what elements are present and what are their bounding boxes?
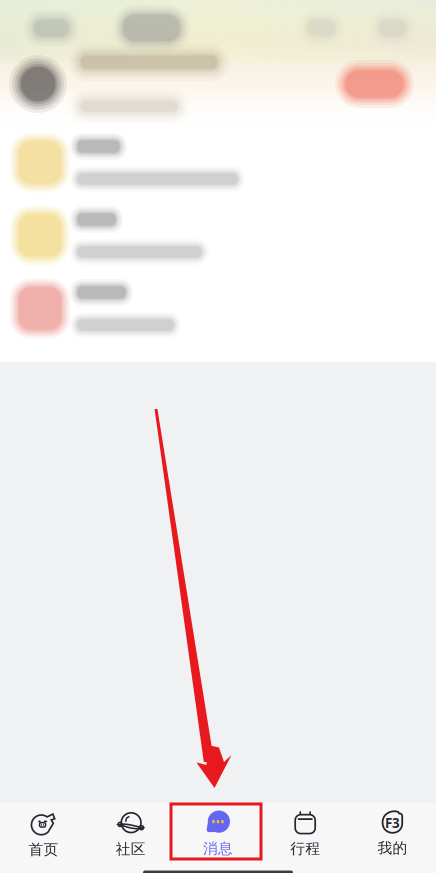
button[interactable]: 首页 — [0, 803, 87, 865]
button[interactable] — [0, 272, 436, 345]
staticText: 消息 — [203, 839, 233, 857]
staticText: F3 — [385, 814, 400, 832]
button[interactable] — [0, 126, 436, 199]
button[interactable]: 行程 — [262, 803, 349, 865]
button[interactable]: 社区 — [87, 803, 174, 865]
button[interactable]: 消息 — [174, 803, 262, 865]
button[interactable]: F3 — [349, 803, 436, 865]
staticText: 首页 — [29, 840, 59, 858]
staticText: 社区 — [116, 840, 146, 858]
button[interactable] — [0, 199, 436, 272]
staticText: 我的 — [377, 839, 407, 857]
staticText: 行程 — [290, 839, 320, 857]
